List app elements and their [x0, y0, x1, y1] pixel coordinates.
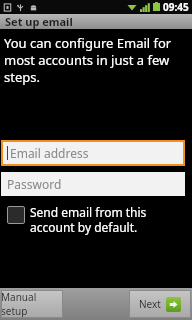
staticText: Set up email: [5, 14, 73, 29]
button[interactable]: Send email from this account by default.: [7, 204, 186, 235]
button[interactable]: Manual setup: [1, 290, 63, 318]
staticText: 09:45: [163, 0, 189, 14]
button[interactable]: Email address: [3, 142, 183, 164]
staticText: Send email from this account by default.: [30, 204, 186, 235]
button[interactable]: Password: [1, 172, 185, 196]
staticText: Password: [7, 176, 62, 192]
button[interactable]: Next: [129, 290, 191, 318]
staticText: You can configure Email for most account…: [4, 34, 184, 86]
other: Next: [166, 297, 181, 312]
staticText: Manual setup: [1, 290, 63, 318]
staticText: Next: [139, 297, 161, 311]
staticText: Email address: [10, 145, 89, 161]
